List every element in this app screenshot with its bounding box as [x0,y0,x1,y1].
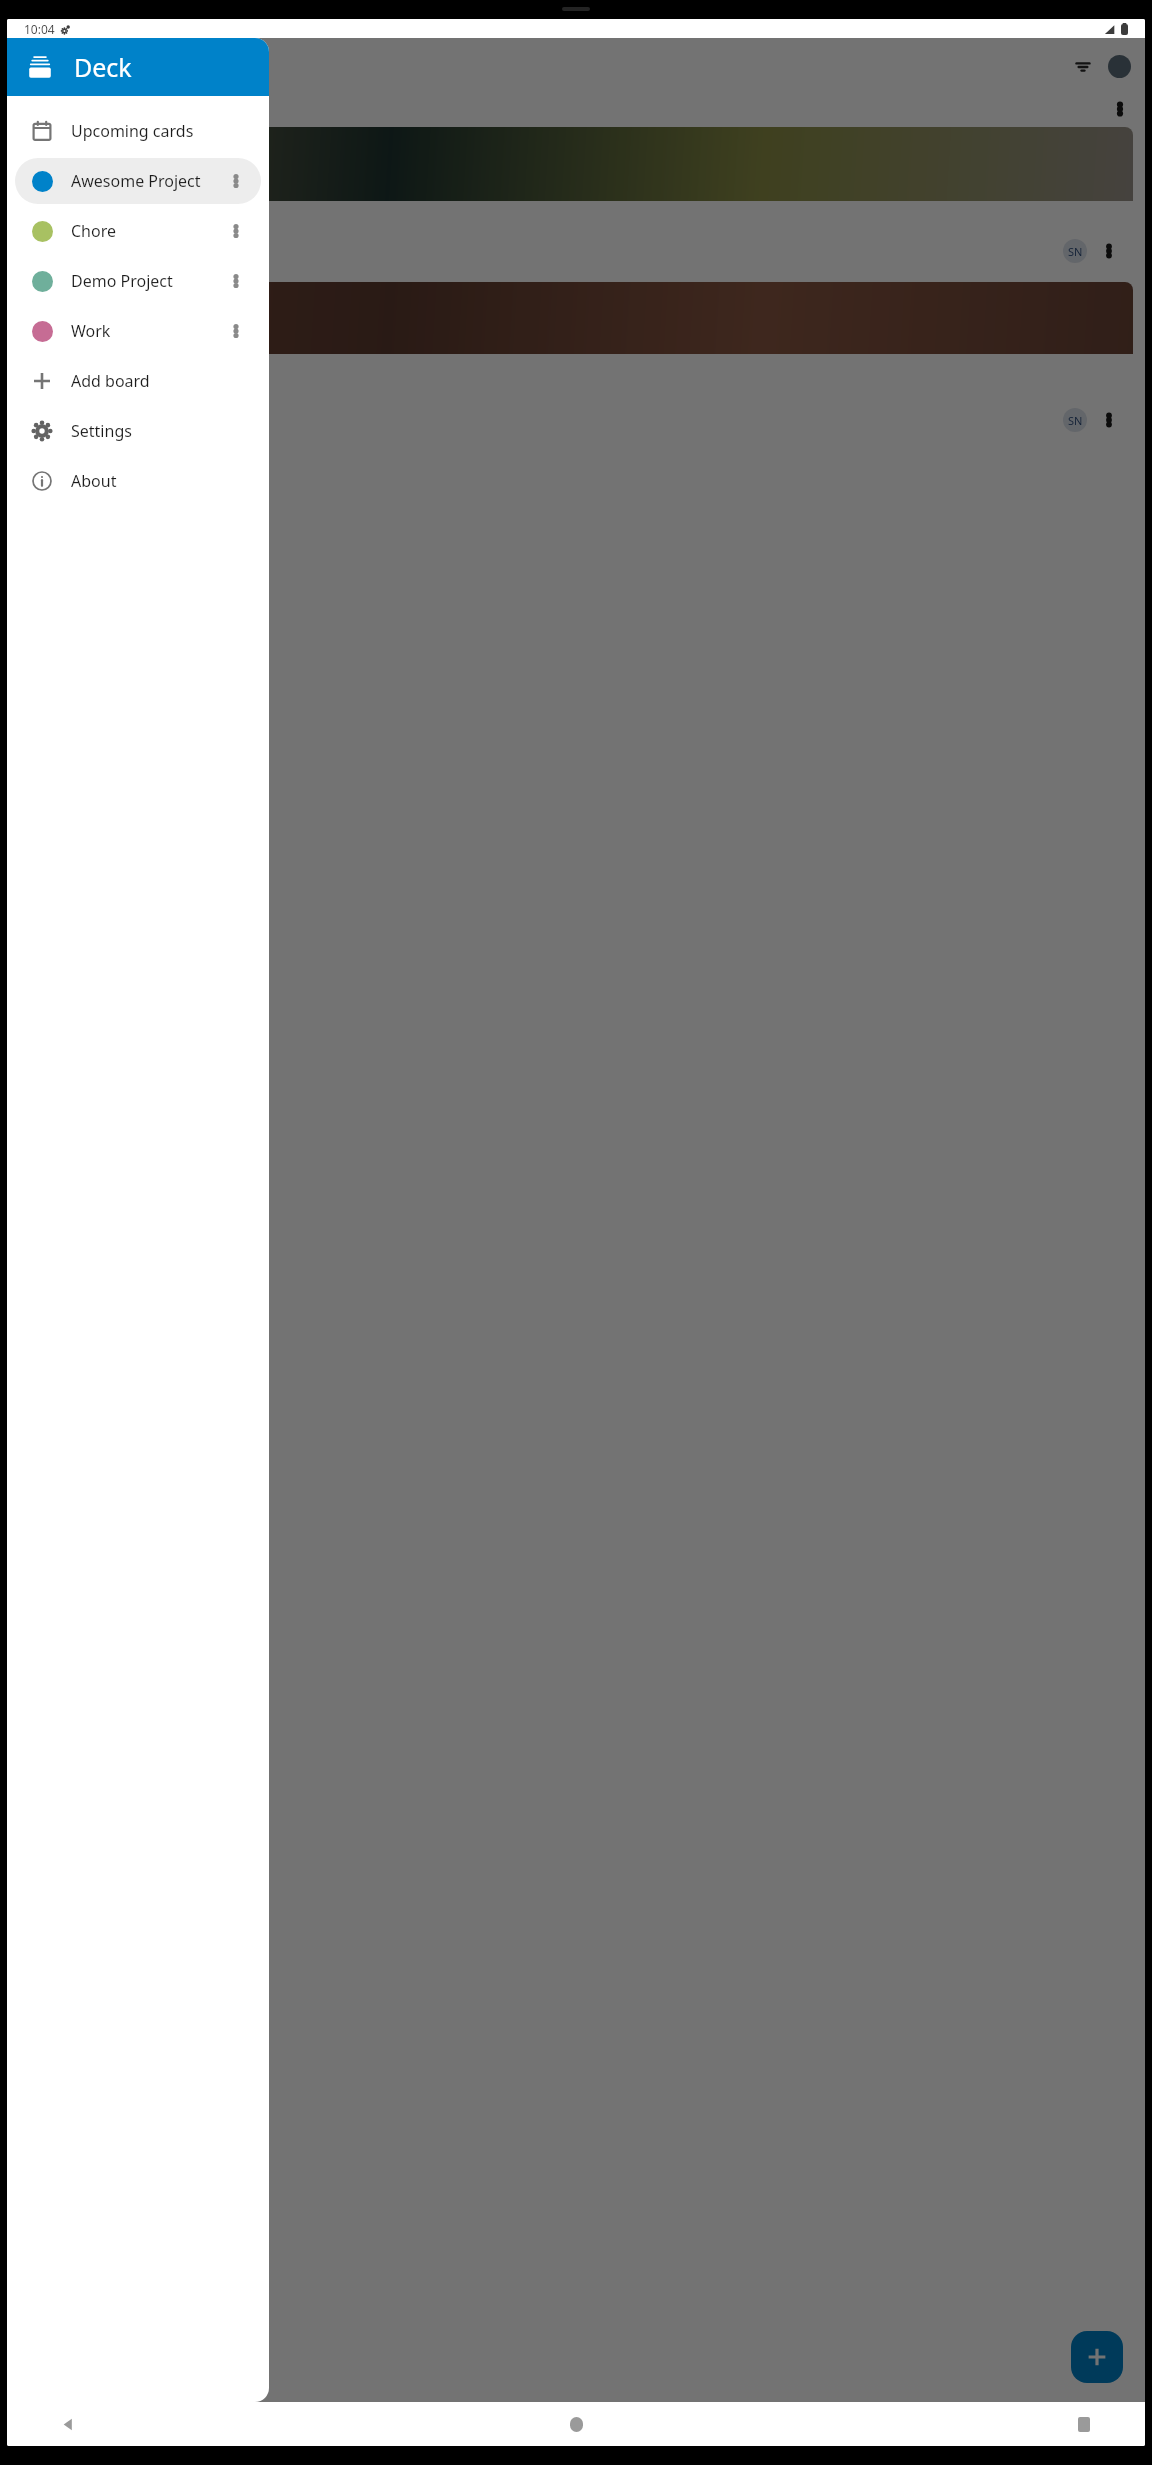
staticText: Upcoming cards [71,120,194,142]
button[interactable]: More options for Work [221,316,251,346]
staticText: Add board [71,370,150,392]
staticText: Settings [71,420,132,442]
button[interactable]: Chore [15,208,261,254]
button[interactable]: Recent apps [1067,2407,1101,2441]
staticText: 10:04 [24,21,55,37]
button[interactable]: More options for Demo Project [221,266,251,296]
button[interactable]: Work [15,308,261,354]
button[interactable]: More options for Chore [221,216,251,246]
staticText: Nov 11 [57,363,103,382]
button[interactable]: More options for Awesome Project [221,166,251,196]
button[interactable]: Upcoming cards [15,108,261,154]
button[interactable]: Demo Project [15,258,261,304]
button[interactable]: Awesome Project [15,158,261,204]
staticText: Deck [74,50,132,84]
staticText: SN [1068,244,1083,259]
staticText: Demo Project [71,270,173,292]
staticText: Chore [71,220,116,242]
staticText: About [71,470,117,492]
button[interactable]: Home [559,2407,593,2441]
button[interactable]: Settings [15,408,261,454]
staticText: SN [1068,413,1083,428]
staticText: Work [71,320,111,342]
button[interactable]: Back [51,2407,85,2441]
button[interactable]: About [15,458,261,504]
button[interactable]: Add card [1071,2331,1123,2383]
button[interactable]: Add board [15,358,261,404]
staticText: Awesome Project [71,170,201,192]
